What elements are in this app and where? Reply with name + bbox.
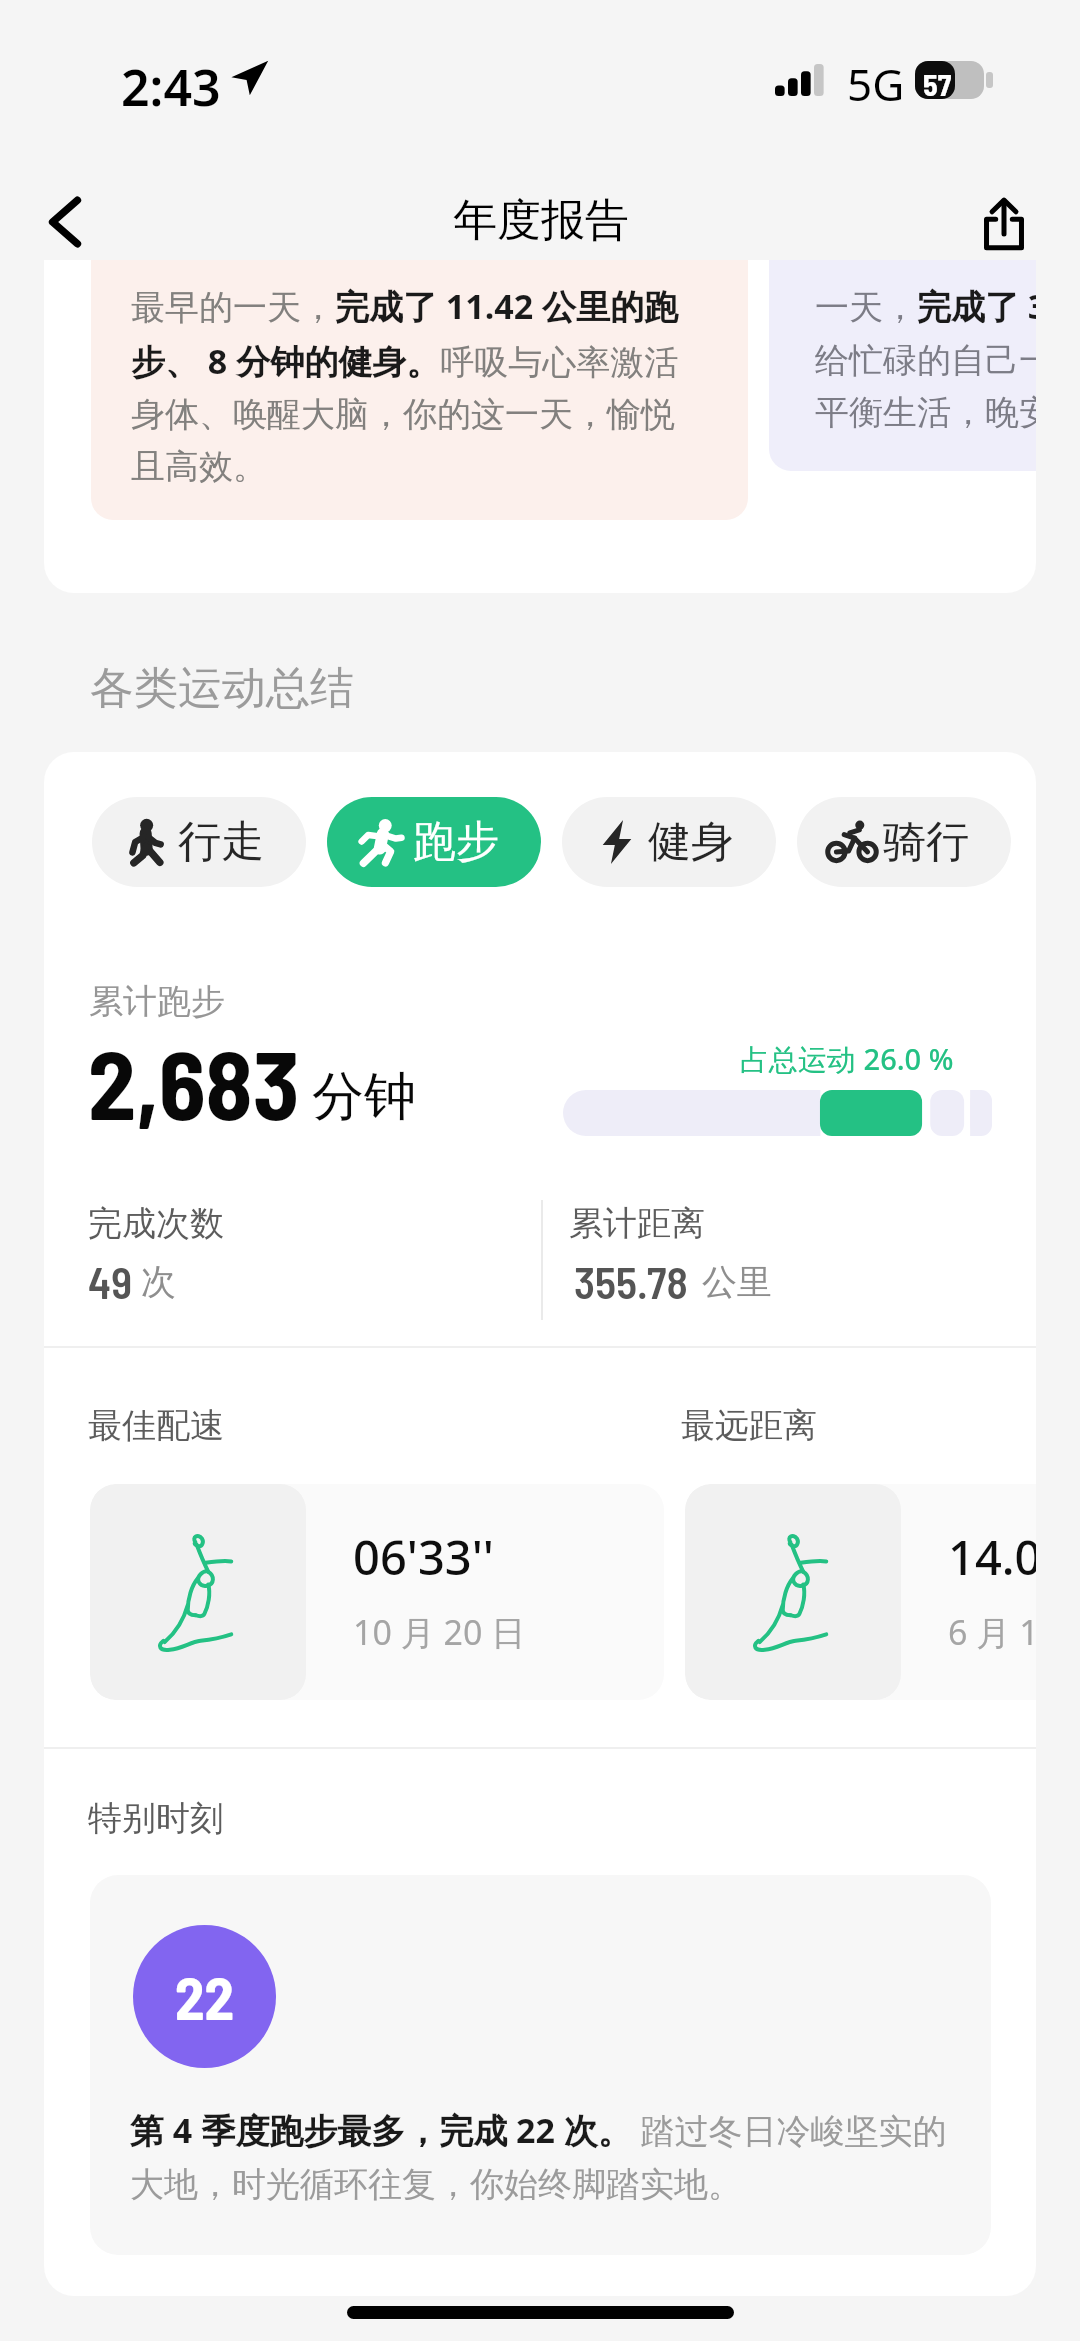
button[interactable]: 骑行 <box>797 797 1011 887</box>
button[interactable]: 06'33'' <box>90 1484 664 1700</box>
staticText: 第 4 季度跑步最多，完成 22 次。 踏过冬日冷峻坚实的大地，时光循环往复，你… <box>130 2107 970 2206</box>
staticText: 行走 <box>178 815 264 869</box>
button[interactable]: Back <box>23 180 107 264</box>
button[interactable]: 14.06 公里 <box>685 1484 1036 1700</box>
staticText: 跑步 <box>413 815 499 869</box>
staticText: 49 <box>88 1255 133 1308</box>
staticText: 健身 <box>648 815 734 869</box>
button[interactable]: 22 <box>90 1875 991 2255</box>
staticText: 占总运动 26.0 % <box>740 1039 954 1079</box>
staticText: 年度报告 <box>453 193 629 248</box>
button[interactable]: Share <box>962 182 1046 266</box>
staticText: 5G <box>847 54 905 114</box>
button[interactable]: 健身 <box>562 797 776 887</box>
staticText: 6 月 16 日 <box>948 1609 1036 1655</box>
staticText: 完成次数 <box>88 1202 224 1245</box>
button[interactable]: 行走 <box>92 797 306 887</box>
staticText: 10 月 20 日 <box>353 1609 664 1655</box>
staticText: 次 <box>141 1260 176 1304</box>
staticText: 公里 <box>702 1260 772 1304</box>
staticText: 分钟 <box>312 1064 416 1130</box>
staticText: 2:43 <box>121 53 221 121</box>
staticText: 57 <box>923 66 952 102</box>
staticText: 特别时刻 <box>88 1797 224 1840</box>
staticText: 最佳配速 <box>88 1404 224 1447</box>
staticText: 2,683 <box>88 1024 300 1139</box>
staticText: 骑行 <box>883 815 969 869</box>
staticText: 累计距离 <box>569 1202 705 1245</box>
staticText: 14.06 公里 <box>948 1525 1036 1589</box>
staticText: 355.78 <box>574 1255 688 1308</box>
staticText: 最远距离 <box>681 1404 817 1447</box>
staticText: 22 <box>175 1961 234 2032</box>
staticText: 累计跑步 <box>89 980 225 1023</box>
button[interactable]: 跑步 <box>327 797 541 887</box>
staticText: 06'33'' <box>353 1525 664 1589</box>
staticText: 最早的一天，完成了 11.42 公里的跑步、 8 分钟的健身。呼吸与心率激活身体… <box>131 283 693 488</box>
staticText: 各类运动总结 <box>90 661 354 716</box>
staticText: 一天，完成了 3 给忙碌的自己一 平衡生活，晚安 <box>815 283 1036 434</box>
